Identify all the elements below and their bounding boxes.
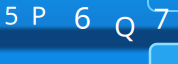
staticText: P [31,0,46,32]
staticText: 6 [73,0,91,37]
staticText: Q [114,7,136,45]
staticText: 7 [153,0,169,37]
staticText: 5 [4,0,18,32]
